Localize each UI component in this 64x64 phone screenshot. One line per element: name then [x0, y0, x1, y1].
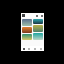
button[interactable] — [33, 33, 43, 40]
button[interactable]: Menu — [21, 13, 26, 18]
button[interactable] — [22, 27, 32, 33]
button[interactable]: Tab 3 — [38, 46, 44, 51]
button[interactable] — [22, 19, 32, 26]
button[interactable]: Tab 0 — [21, 46, 26, 51]
button[interactable]: Tab 1 — [26, 46, 32, 51]
button[interactable] — [22, 34, 32, 40]
button[interactable]: Search — [34, 13, 39, 18]
button[interactable]: More — [39, 13, 44, 18]
button[interactable]: Tab 2 — [32, 46, 38, 51]
button[interactable] — [33, 19, 43, 24]
button[interactable] — [33, 25, 43, 32]
